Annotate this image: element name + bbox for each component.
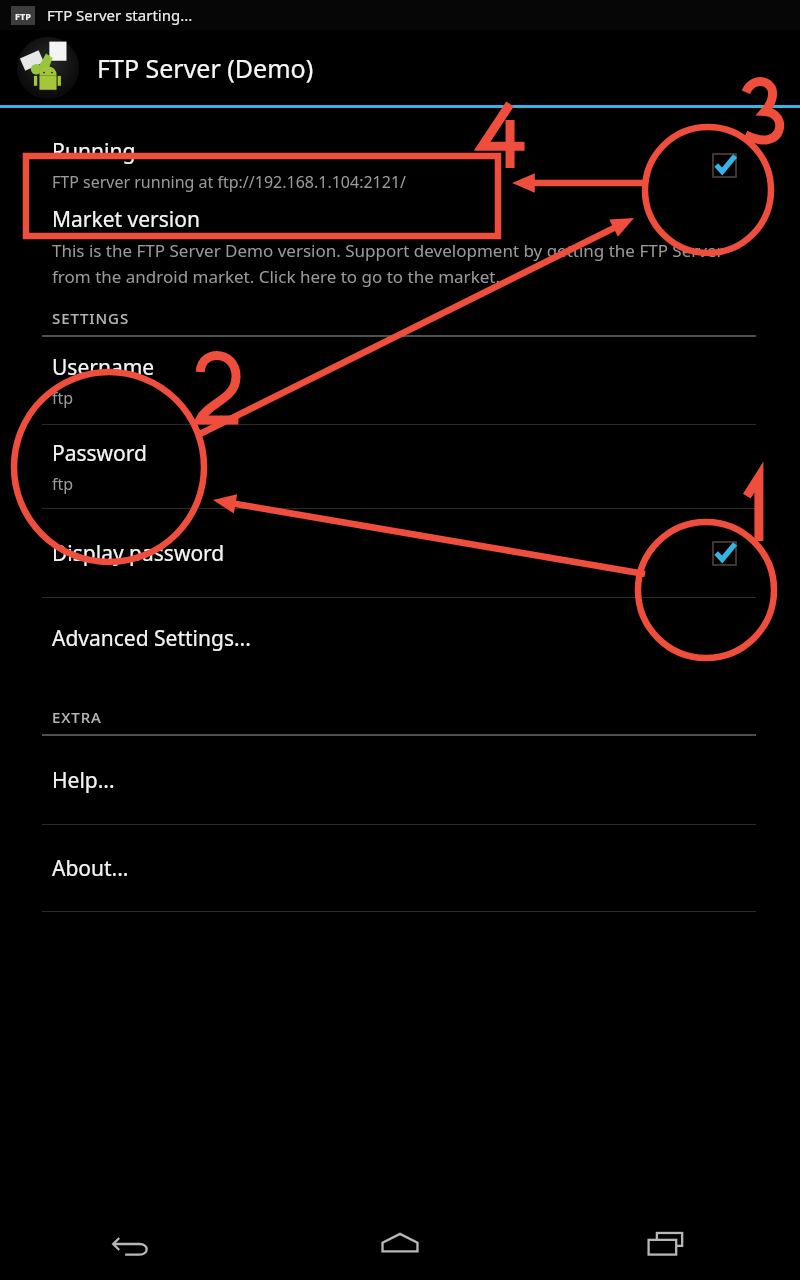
staticText: Password <box>52 439 147 468</box>
button[interactable]: Toggle checkbox <box>706 535 742 571</box>
staticText: SETTINGS <box>52 308 130 328</box>
staticText: ftp <box>52 387 74 409</box>
staticText: FTP server running at ftp://192.168.1.10… <box>52 171 407 193</box>
button[interactable]: Home <box>266 1208 533 1280</box>
staticText: Advanced Settings... <box>52 624 251 653</box>
button[interactable]: Market version <box>0 205 800 292</box>
button[interactable]: Running <box>0 125 800 205</box>
staticText: Market version <box>52 205 200 234</box>
staticText: Username <box>52 353 155 382</box>
button[interactable]: Advanced Settings... <box>0 598 800 678</box>
button[interactable]: Password <box>0 425 800 508</box>
staticText: Help... <box>52 766 115 795</box>
button[interactable]: Help... <box>0 736 800 824</box>
button[interactable]: About... <box>0 825 800 911</box>
button[interactable]: Display password <box>0 509 800 597</box>
staticText: About... <box>52 854 129 883</box>
staticText: This is the FTP Server Demo version. Sup… <box>52 239 742 288</box>
button[interactable]: Username <box>0 337 800 424</box>
staticText: ftp <box>52 473 74 495</box>
staticText: FTP <box>15 10 31 22</box>
staticText: Display password <box>52 539 225 568</box>
button[interactable]: Recent apps <box>533 1208 800 1280</box>
staticText: FTP Server (Demo) <box>97 51 314 85</box>
staticText: Running <box>52 137 136 166</box>
button[interactable]: Back <box>0 1208 266 1280</box>
button[interactable]: Toggle checkbox <box>706 147 742 183</box>
staticText: FTP Server starting... <box>47 5 193 25</box>
staticText: EXTRA <box>52 707 102 727</box>
